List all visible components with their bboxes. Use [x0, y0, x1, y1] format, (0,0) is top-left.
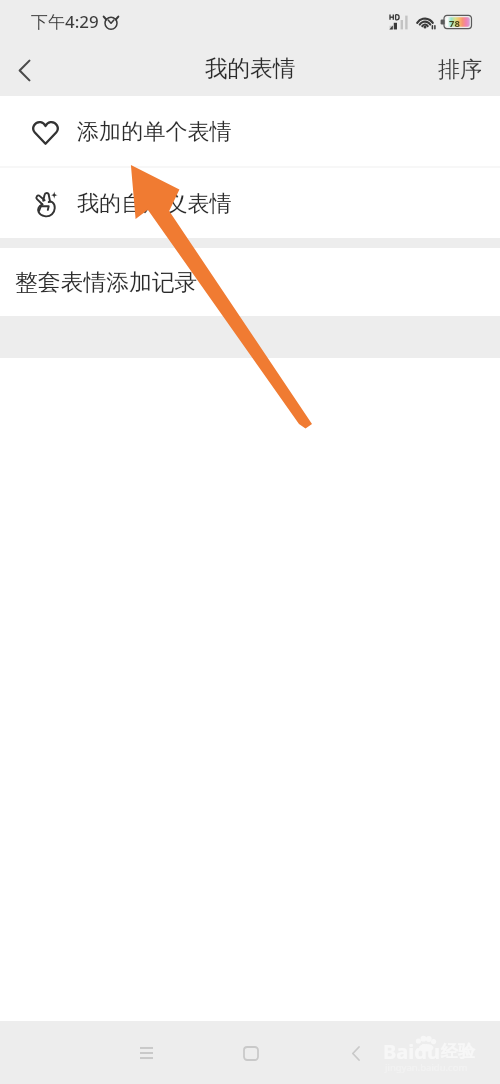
staticText: Baidu	[383, 1038, 440, 1065]
button[interactable]: Home	[227, 1029, 275, 1077]
staticText: 排序	[438, 56, 483, 84]
staticText: 我的表情	[205, 54, 296, 82]
button[interactable]: 添加的单个表情	[0, 96, 500, 166]
staticText: 78	[449, 17, 460, 30]
staticText: 我的自定义表情	[77, 190, 232, 218]
button[interactable]: Back	[331, 1029, 379, 1077]
button[interactable]: 我的自定义表情	[0, 168, 500, 238]
staticText: 添加的单个表情	[77, 118, 232, 146]
button[interactable]: Recent apps	[122, 1029, 170, 1077]
staticText: 经验	[441, 1041, 475, 1062]
staticText: 整套表情添加记录	[15, 268, 198, 297]
button[interactable]: Back	[2, 48, 46, 92]
staticText: 下午4:29	[31, 10, 99, 33]
button[interactable]: 整套表情添加记录	[0, 248, 500, 316]
button[interactable]: 排序	[424, 44, 500, 96]
